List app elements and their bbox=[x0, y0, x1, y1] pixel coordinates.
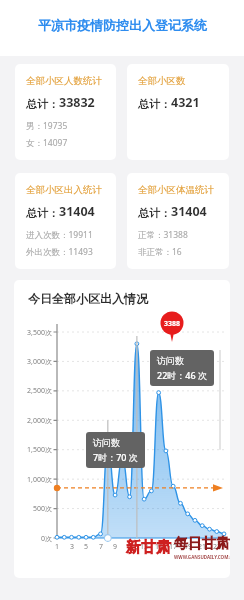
staticText: 总计： bbox=[138, 97, 171, 111]
button[interactable]: 全部小区人数统计 bbox=[15, 64, 116, 160]
staticText: 11 bbox=[125, 542, 135, 552]
staticText: 17 bbox=[168, 542, 178, 552]
staticText: 访问数 bbox=[157, 355, 184, 366]
button[interactable]: 全部小区体温统计 bbox=[127, 173, 229, 269]
staticText: 23 bbox=[212, 542, 222, 552]
staticText: 15 bbox=[154, 542, 164, 552]
staticText: 正常：31388 bbox=[138, 229, 188, 241]
staticText: 33832 bbox=[59, 94, 95, 111]
staticText: 每日甘肃网 bbox=[174, 535, 230, 553]
staticText: 全部小区体温统计 bbox=[138, 184, 214, 196]
staticText: 2,000次 bbox=[14, 416, 52, 426]
staticText: 7 bbox=[96, 542, 106, 552]
staticText: 31404 bbox=[171, 203, 207, 220]
staticText: 女：14097 bbox=[26, 137, 68, 149]
staticText: 3,000次 bbox=[14, 357, 52, 367]
staticText: 新甘肃 bbox=[126, 538, 171, 557]
staticText: 3,500次 bbox=[14, 328, 52, 338]
staticText: 1,500次 bbox=[14, 445, 52, 455]
staticText: 4321 bbox=[171, 94, 200, 111]
staticText: 2,500次 bbox=[14, 386, 52, 396]
staticText: 总计： bbox=[26, 97, 59, 111]
button[interactable]: 峰值 3388 bbox=[160, 311, 184, 342]
staticText: WWW.GANSUDAILY.COM.CN bbox=[174, 554, 230, 560]
button[interactable]: 今日全部小区出入情况 bbox=[14, 280, 230, 578]
staticText: 男：19735 bbox=[26, 120, 68, 132]
staticText: 总计： bbox=[26, 206, 59, 220]
staticText: 总计： bbox=[138, 206, 171, 220]
staticText: 0次 bbox=[14, 534, 52, 544]
staticText: 5 bbox=[81, 542, 91, 552]
staticText: 19 bbox=[183, 542, 193, 552]
staticText: 外出次数：11493 bbox=[26, 246, 93, 258]
staticText: 31404 bbox=[59, 203, 95, 220]
button[interactable]: 全部小区出入统计 bbox=[15, 173, 116, 269]
staticText: 13 bbox=[139, 542, 149, 552]
staticText: 1,000次 bbox=[14, 475, 52, 485]
staticText: 7时：70 次 bbox=[93, 451, 138, 463]
staticText: 非正常：16 bbox=[138, 246, 182, 258]
staticText: 21 bbox=[197, 542, 207, 552]
staticText: 500次 bbox=[14, 504, 52, 514]
staticText: 进入次数：19911 bbox=[26, 229, 93, 241]
button[interactable]: 全部小区数 bbox=[127, 64, 229, 160]
staticText: 访问数 bbox=[93, 437, 120, 448]
button[interactable]: 访问数 bbox=[150, 350, 214, 386]
staticText: 全部小区数 bbox=[138, 75, 186, 87]
staticText: 3 bbox=[67, 542, 77, 552]
staticText: 3388 bbox=[164, 319, 181, 329]
staticText: 全部小区人数统计 bbox=[26, 75, 102, 87]
staticText: 今日全部小区出入情况 bbox=[28, 291, 148, 306]
staticText: 全部小区出入统计 bbox=[26, 184, 102, 196]
staticText: 22时：46 次 bbox=[157, 369, 207, 381]
button[interactable]: 访问数 bbox=[86, 432, 145, 468]
staticText: 9 bbox=[110, 542, 120, 552]
staticText: 1 bbox=[52, 542, 62, 552]
staticText: 平凉市疫情防控出入登记系统 bbox=[38, 17, 207, 33]
